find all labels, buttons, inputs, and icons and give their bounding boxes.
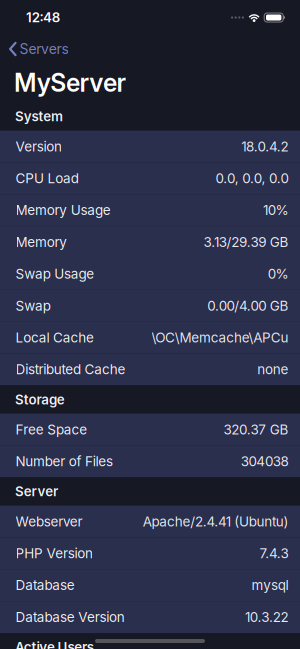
staticText: Distributed Cache	[15, 361, 125, 378]
staticText: Database Version	[15, 609, 125, 625]
staticText: 10%	[263, 202, 288, 218]
staticText: Swap Usage	[15, 266, 94, 282]
staticText: PHP Version	[15, 545, 93, 561]
staticText: Free Space	[15, 421, 87, 438]
staticText: Apache/2.4.41 (Ubuntu)	[143, 513, 289, 530]
staticText: Memory Usage	[15, 202, 111, 218]
staticText: Servers	[20, 40, 68, 57]
staticText: Memory	[15, 234, 67, 250]
staticText: Active Users	[15, 639, 94, 649]
staticText: mysql	[251, 577, 288, 593]
staticText: Swap	[15, 298, 51, 314]
staticText: 0.00/4.00 GB	[207, 298, 288, 314]
staticText: 7.4.3	[259, 545, 288, 561]
staticText: Number of Files	[15, 453, 113, 470]
staticText: Local Cache	[15, 329, 94, 346]
button[interactable]: Servers	[0, 35, 300, 63]
staticText: MyServer	[14, 68, 127, 98]
staticText: Database	[15, 577, 75, 593]
staticText: Server	[15, 483, 58, 499]
staticText: none	[257, 361, 288, 378]
staticText: 0.0, 0.0, 0.0	[215, 170, 288, 186]
staticText: Version	[15, 138, 62, 155]
staticText: 304038	[241, 453, 289, 470]
staticText: Webserver	[15, 513, 82, 530]
staticText: 3.13/29.39 GB	[203, 234, 288, 250]
staticText: 18.0.4.2	[241, 138, 288, 155]
staticText: 10.3.22	[245, 609, 288, 625]
staticText: \OC\Memcache\APCu	[151, 329, 288, 346]
staticText: System	[15, 108, 63, 124]
staticText: CPU Load	[15, 170, 79, 186]
staticText: Storage	[15, 391, 65, 408]
staticText: 12:48	[26, 9, 61, 25]
staticText: 320.37 GB	[223, 421, 288, 438]
staticText: 0%	[268, 266, 289, 282]
